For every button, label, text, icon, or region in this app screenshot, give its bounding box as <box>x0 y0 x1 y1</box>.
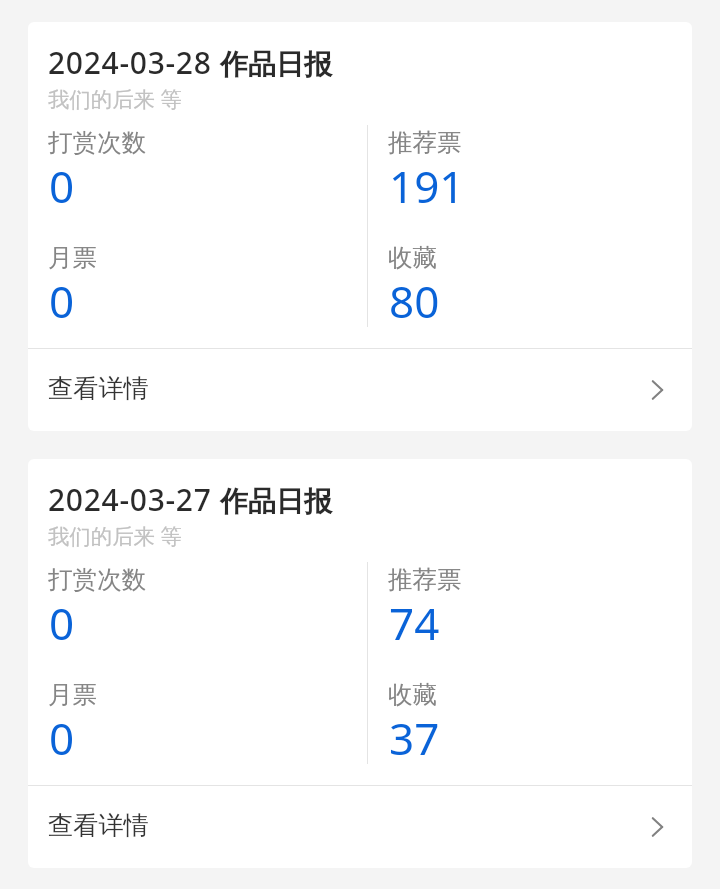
other: 查看详情 <box>645 814 667 840</box>
staticText: 我们的后来 等 <box>48 84 182 113</box>
staticText: 查看详情 <box>48 810 149 842</box>
staticText: 0 <box>49 593 75 653</box>
button[interactable]: 2024-03-27 作品日报 <box>28 459 692 868</box>
other: 查看详情 <box>645 377 667 403</box>
button[interactable]: 查看详情 <box>28 786 692 868</box>
staticText: 推荐票 <box>388 127 462 158</box>
staticText: 74 <box>389 593 440 653</box>
staticText: 2024-03-28 作品日报 <box>48 42 333 83</box>
staticText: 查看详情 <box>48 373 149 405</box>
button[interactable]: 查看详情 <box>28 349 692 431</box>
staticText: 80 <box>389 271 440 331</box>
staticText: 推荐票 <box>388 564 462 595</box>
staticText: 月票 <box>48 679 97 710</box>
staticText: 我们的后来 等 <box>48 521 182 550</box>
staticText: 2024-03-27 作品日报 <box>48 479 333 520</box>
staticText: 0 <box>49 708 75 768</box>
staticText: 0 <box>49 271 75 331</box>
staticText: 打赏次数 <box>48 127 146 158</box>
staticText: 收藏 <box>388 679 437 710</box>
staticText: 37 <box>389 708 440 768</box>
staticText: 打赏次数 <box>48 564 146 595</box>
staticText: 收藏 <box>388 242 437 273</box>
button[interactable]: 2024-03-28 作品日报 <box>28 22 692 431</box>
staticText: 191 <box>389 156 465 216</box>
staticText: 月票 <box>48 242 97 273</box>
staticText: 0 <box>49 156 75 216</box>
